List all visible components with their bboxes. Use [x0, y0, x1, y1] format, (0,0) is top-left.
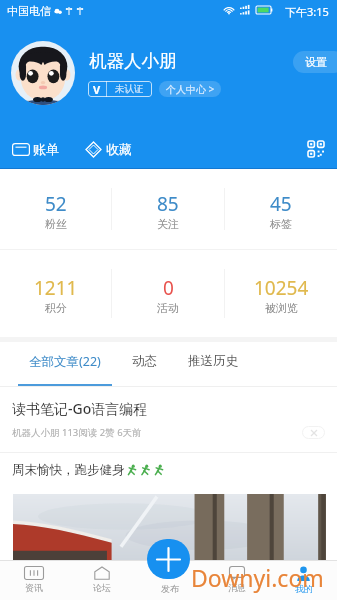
staticText: 周末愉快，跑步健身 [12, 462, 125, 478]
button[interactable]: 85 [112, 169, 224, 249]
button[interactable]: 10254 [225, 250, 337, 337]
staticText: 0 [163, 275, 174, 301]
staticText: 收藏 [106, 141, 132, 157]
staticText: 中国电信 [7, 4, 51, 18]
staticText: 粉丝 [45, 217, 67, 231]
staticText: 发布 [161, 583, 179, 594]
staticText: 全部文章(22) [29, 353, 101, 370]
staticText: 未认证 [115, 83, 144, 95]
staticText: 账单 [33, 141, 59, 157]
staticText: 下午3:15 [285, 4, 329, 19]
staticText: 积分 [45, 301, 67, 315]
button[interactable]: 设置 [293, 51, 337, 73]
button[interactable]: 读书笔记-Go语言编程 [0, 387, 337, 452]
staticText: 关注 [157, 217, 179, 231]
staticText: 52 [45, 191, 67, 217]
button[interactable]: 删除 [302, 426, 325, 439]
button[interactable]: 发布 [136, 560, 203, 600]
button[interactable]: 消息 [203, 560, 270, 600]
staticText: 45 [270, 191, 292, 217]
staticText: 读书笔记-Go语言编程 [12, 399, 148, 418]
button[interactable]: 发布 [147, 539, 190, 579]
button[interactable]: 动态 [124, 342, 164, 386]
button[interactable]: 0 [112, 250, 224, 337]
staticText: V [93, 82, 101, 97]
button[interactable]: 周末愉快，跑步健身 [0, 453, 337, 560]
button[interactable]: 45 [225, 169, 337, 249]
staticText: 机器人小朋 [89, 50, 177, 72]
staticText: 设置 [305, 55, 327, 69]
staticText: 85 [157, 191, 179, 217]
button[interactable]: V [88, 81, 152, 97]
button[interactable]: 论坛 [68, 560, 136, 600]
button[interactable]: 全部文章(22) [18, 342, 112, 386]
button[interactable]: 账单 [12, 132, 59, 166]
button[interactable]: 个人中心 > [159, 81, 221, 97]
staticText: 被浏览 [265, 301, 298, 315]
staticText: 资讯 [25, 582, 43, 593]
button[interactable]: 52 [0, 169, 111, 249]
staticText: Downyi.com [191, 562, 324, 593]
button[interactable]: 推送历史 [178, 342, 248, 386]
staticText: 论坛 [93, 582, 111, 593]
button[interactable]: 资讯 [0, 560, 68, 600]
button[interactable]: 收藏 [85, 132, 132, 166]
staticText: 我的 [295, 583, 313, 594]
button[interactable]: 扫一扫 [305, 138, 327, 160]
button[interactable]: 1211 [0, 250, 111, 337]
staticText: 个人中心 > [166, 82, 215, 96]
staticText: 活动 [157, 301, 179, 315]
staticText: 消息 [228, 582, 246, 593]
staticText: 动态 [132, 353, 157, 369]
button[interactable]: 我的 [270, 560, 337, 600]
staticText: 机器人小朋 113阅读 2赞 6天前 [12, 426, 142, 439]
staticText: 10254 [254, 275, 309, 301]
staticText: 标签 [270, 217, 292, 231]
staticText: 1211 [34, 275, 78, 301]
staticText: 推送历史 [188, 353, 238, 369]
